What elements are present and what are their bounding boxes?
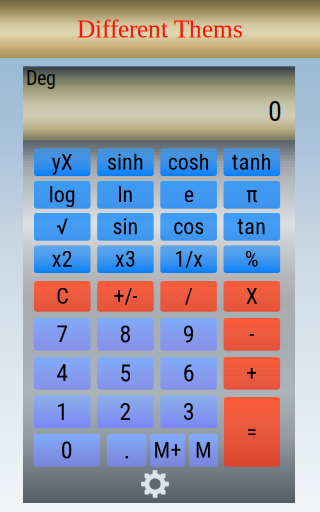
button[interactable]: 3 bbox=[160, 395, 217, 428]
button[interactable]: 1/x bbox=[160, 245, 217, 273]
staticText: - bbox=[249, 321, 254, 347]
button[interactable]: tanh bbox=[224, 148, 280, 176]
button[interactable]: cosh bbox=[160, 148, 217, 176]
button[interactable]: = bbox=[224, 397, 280, 466]
button[interactable]: Settings bbox=[139, 468, 171, 500]
button[interactable]: 4 bbox=[34, 357, 90, 389]
staticText: 4 bbox=[56, 359, 68, 387]
button[interactable]: π bbox=[224, 181, 280, 208]
button[interactable]: X bbox=[224, 281, 280, 311]
staticText: e bbox=[184, 182, 194, 208]
staticText: . bbox=[124, 436, 130, 464]
staticText: ln bbox=[117, 182, 133, 208]
button[interactable]: yX bbox=[34, 148, 90, 176]
staticText: π bbox=[246, 182, 257, 208]
staticText: log bbox=[49, 182, 76, 208]
button[interactable]: log bbox=[34, 181, 90, 208]
button[interactable]: x2 bbox=[34, 245, 90, 273]
button[interactable]: / bbox=[160, 281, 217, 311]
staticText: 0 bbox=[61, 436, 73, 464]
button[interactable]: sinh bbox=[97, 148, 154, 176]
staticText: M bbox=[195, 437, 212, 463]
staticText: 0 bbox=[268, 95, 282, 128]
staticText: x2 bbox=[52, 246, 73, 272]
button[interactable]: ln bbox=[97, 181, 154, 208]
staticText: 2 bbox=[119, 398, 131, 426]
button[interactable]: cos bbox=[160, 213, 217, 240]
staticText: M+ bbox=[153, 437, 181, 463]
button[interactable]: C bbox=[34, 281, 90, 311]
button[interactable]: % bbox=[224, 245, 280, 273]
staticText: sinh bbox=[107, 149, 144, 175]
button[interactable]: +/- bbox=[97, 281, 154, 311]
button[interactable]: 0 bbox=[33, 434, 100, 466]
button[interactable]: x3 bbox=[97, 245, 154, 273]
button[interactable]: . bbox=[107, 434, 146, 466]
staticText: +/- bbox=[113, 283, 137, 309]
staticText: 1 bbox=[56, 398, 68, 426]
button[interactable]: 1 bbox=[34, 395, 90, 428]
staticText: % bbox=[245, 246, 259, 272]
staticText: cosh bbox=[168, 149, 210, 175]
button[interactable]: e bbox=[160, 181, 217, 208]
staticText: / bbox=[185, 283, 193, 309]
staticText: cos bbox=[173, 214, 204, 240]
button[interactable]: tan bbox=[224, 213, 280, 240]
button[interactable]: 7 bbox=[34, 318, 90, 350]
staticText: 6 bbox=[183, 359, 195, 387]
staticText: X bbox=[246, 283, 258, 309]
button[interactable]: + bbox=[224, 357, 280, 389]
staticText: 5 bbox=[119, 359, 131, 387]
staticText: tan bbox=[237, 214, 266, 240]
button[interactable]: M+ bbox=[150, 434, 185, 466]
button[interactable]: 5 bbox=[97, 357, 154, 389]
staticText: C bbox=[56, 283, 68, 309]
button[interactable]: - bbox=[224, 318, 280, 350]
button[interactable]: 6 bbox=[160, 357, 217, 389]
staticText: 7 bbox=[56, 320, 68, 348]
staticText: + bbox=[246, 360, 257, 386]
staticText: 1/x bbox=[174, 246, 203, 272]
staticText: 8 bbox=[119, 320, 131, 348]
staticText: sin bbox=[112, 214, 138, 240]
staticText: yX bbox=[52, 149, 73, 175]
staticText: x3 bbox=[115, 246, 136, 272]
staticText: Different Thems bbox=[77, 15, 243, 43]
button[interactable]: 8 bbox=[97, 318, 154, 350]
button[interactable]: 2 bbox=[97, 395, 154, 428]
staticText: Deg bbox=[26, 66, 56, 90]
button[interactable]: sin bbox=[97, 213, 154, 240]
staticText: tanh bbox=[232, 149, 272, 175]
button[interactable]: 9 bbox=[160, 318, 217, 350]
staticText: = bbox=[246, 419, 257, 445]
button[interactable]: √ bbox=[34, 213, 90, 240]
button[interactable]: M bbox=[189, 434, 218, 466]
staticText: 9 bbox=[183, 320, 195, 348]
staticText: √ bbox=[56, 214, 68, 240]
staticText: 3 bbox=[183, 398, 195, 426]
